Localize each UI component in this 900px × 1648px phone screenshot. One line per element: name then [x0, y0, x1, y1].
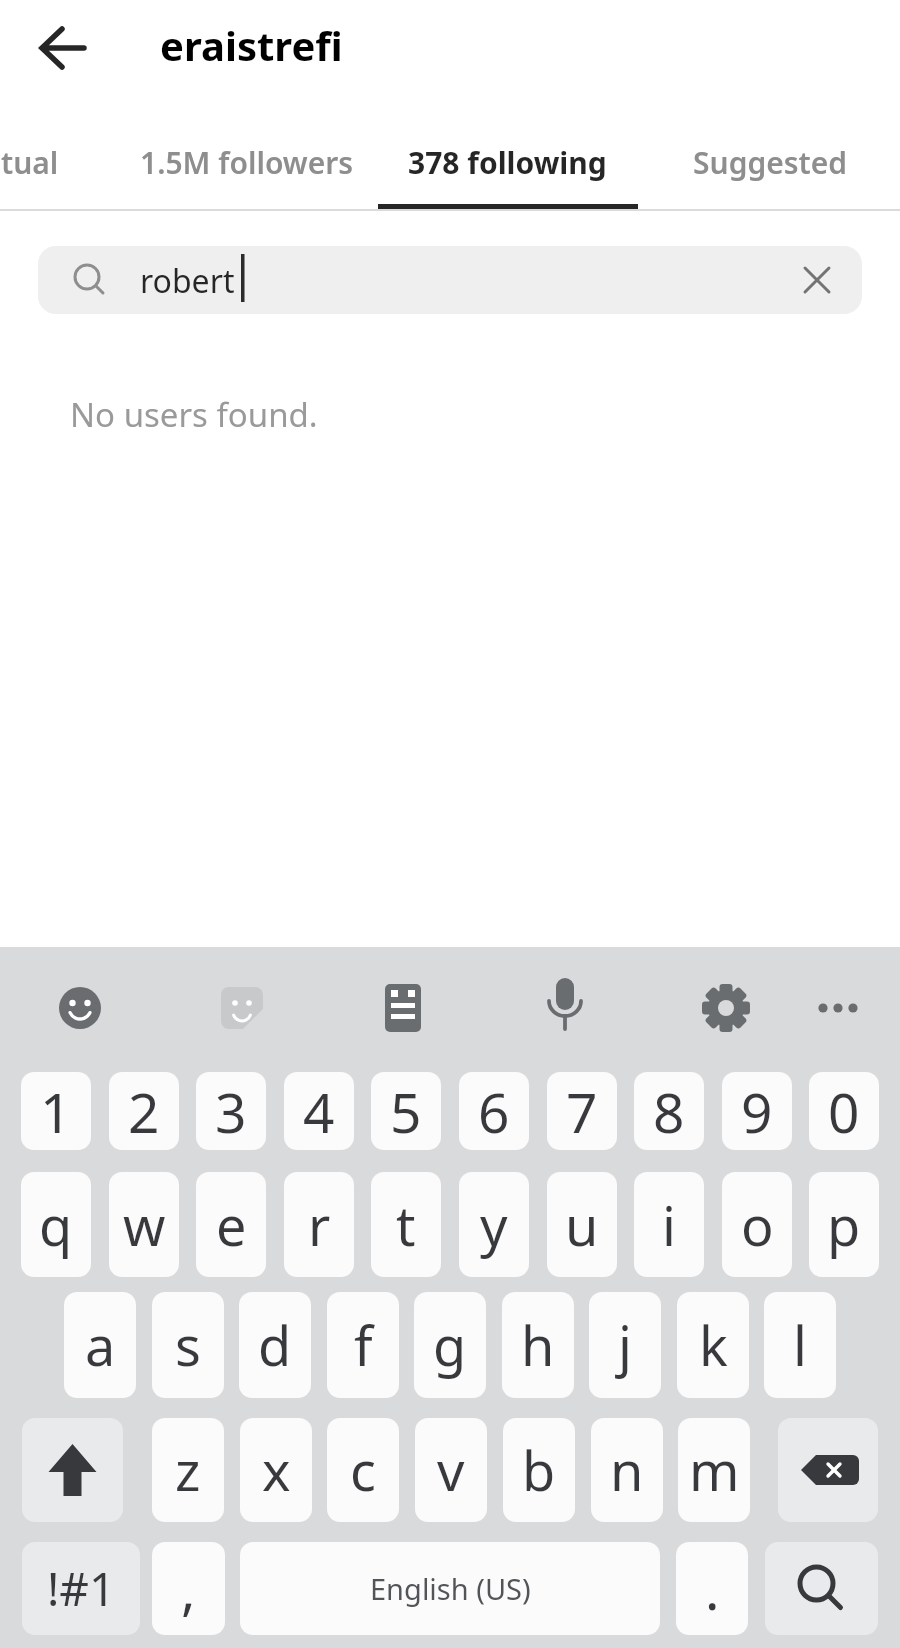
staticText: 6 [478, 1074, 510, 1149]
staticText: English (US) [370, 1569, 531, 1608]
staticText: z [175, 1433, 201, 1507]
staticText: w [123, 1188, 166, 1262]
staticText: , [181, 1552, 196, 1626]
staticText: o [741, 1188, 774, 1262]
staticText: Suggested [693, 142, 848, 183]
staticText: n [610, 1433, 644, 1507]
staticText: b [522, 1433, 556, 1507]
staticText: 7 [566, 1074, 598, 1149]
staticText: 1.5M followers [140, 142, 354, 183]
staticText: v [437, 1433, 465, 1507]
staticText: 378 following [408, 142, 607, 183]
staticText: p [827, 1188, 861, 1262]
staticText: s [175, 1308, 201, 1382]
button[interactable]: a [64, 1292, 136, 1398]
button[interactable]: o [722, 1172, 792, 1277]
button[interactable]: y [459, 1172, 529, 1277]
staticText: 5 [390, 1074, 422, 1149]
button[interactable]: !#1 [22, 1542, 140, 1635]
staticText: d [258, 1308, 292, 1382]
button[interactable]: 2 [109, 1072, 179, 1150]
button[interactable] [800, 970, 876, 1046]
button[interactable] [204, 970, 280, 1046]
button[interactable] [365, 970, 441, 1046]
staticText: i [662, 1188, 676, 1262]
staticText: x [262, 1433, 291, 1507]
button[interactable]: w [109, 1172, 179, 1277]
staticText: 0 [828, 1074, 860, 1149]
button[interactable]: e [196, 1172, 266, 1277]
button[interactable]: 1.5M followers [97, 130, 397, 194]
staticText: e [216, 1188, 247, 1262]
button[interactable]: 378 following [357, 130, 657, 194]
button[interactable]: d [239, 1292, 311, 1398]
staticText: m [689, 1433, 740, 1507]
button[interactable]: robert [38, 246, 862, 314]
button[interactable]: c [327, 1418, 399, 1522]
button[interactable]: x [240, 1418, 312, 1522]
staticText: h [521, 1308, 555, 1382]
button[interactable]: 0 [809, 1072, 879, 1150]
staticText: robert [140, 259, 235, 303]
button[interactable]: p [809, 1172, 879, 1277]
staticText: l [793, 1308, 807, 1382]
button[interactable]: t [371, 1172, 441, 1277]
button[interactable]: 3 [196, 1072, 266, 1150]
staticText: f [354, 1308, 373, 1382]
staticText: q [39, 1188, 73, 1262]
button[interactable]: 8 [634, 1072, 704, 1150]
staticText: !#1 [47, 1557, 116, 1620]
staticText: 3 [215, 1074, 247, 1149]
staticText: 1 [40, 1074, 72, 1149]
button[interactable] [42, 970, 118, 1046]
button[interactable]: 9 [722, 1072, 792, 1150]
button[interactable]: n [591, 1418, 663, 1522]
button[interactable]: b [503, 1418, 575, 1522]
staticText: eraistrefi [160, 18, 343, 72]
staticText: . [705, 1552, 720, 1626]
button[interactable]: k [677, 1292, 749, 1398]
button[interactable]: r [284, 1172, 354, 1277]
staticText: k [699, 1308, 728, 1382]
staticText: 8 [653, 1074, 685, 1149]
button[interactable] [527, 970, 603, 1046]
staticText: g [433, 1308, 467, 1382]
button[interactable]: i [634, 1172, 704, 1277]
button[interactable]: s [152, 1292, 224, 1398]
button[interactable]: m [678, 1418, 750, 1522]
button[interactable]: 5 [371, 1072, 441, 1150]
button[interactable]: v [415, 1418, 487, 1522]
staticText: 2 [128, 1074, 160, 1149]
staticText: No users found. [70, 392, 318, 437]
button[interactable]: f [327, 1292, 399, 1398]
button[interactable]: 4 [284, 1072, 354, 1150]
button[interactable]: . [676, 1542, 748, 1635]
button[interactable]: j [589, 1292, 661, 1398]
staticText: tual [1, 142, 59, 183]
button[interactable]: 6 [459, 1072, 529, 1150]
staticText: 4 [303, 1074, 335, 1149]
button[interactable]: , [152, 1542, 225, 1635]
button[interactable]: u [547, 1172, 617, 1277]
button[interactable]: h [502, 1292, 574, 1398]
button[interactable] [778, 1418, 878, 1522]
button[interactable]: g [414, 1292, 486, 1398]
button[interactable]: l [764, 1292, 836, 1398]
staticText: a [85, 1308, 116, 1382]
button[interactable]: English (US) [240, 1542, 660, 1635]
staticText: u [565, 1188, 599, 1262]
button[interactable]: tual [0, 130, 180, 194]
staticText: c [350, 1433, 376, 1507]
button[interactable] [22, 1418, 123, 1522]
button[interactable] [28, 20, 88, 76]
button[interactable]: 1 [21, 1072, 91, 1150]
button[interactable]: z [152, 1418, 224, 1522]
staticText: j [618, 1308, 632, 1382]
button[interactable] [688, 970, 764, 1046]
button[interactable] [765, 1542, 878, 1635]
button[interactable]: 7 [547, 1072, 617, 1150]
button[interactable]: Suggested [620, 130, 900, 194]
staticText: y [480, 1188, 508, 1262]
button[interactable]: q [21, 1172, 91, 1277]
staticText: r [308, 1188, 331, 1262]
